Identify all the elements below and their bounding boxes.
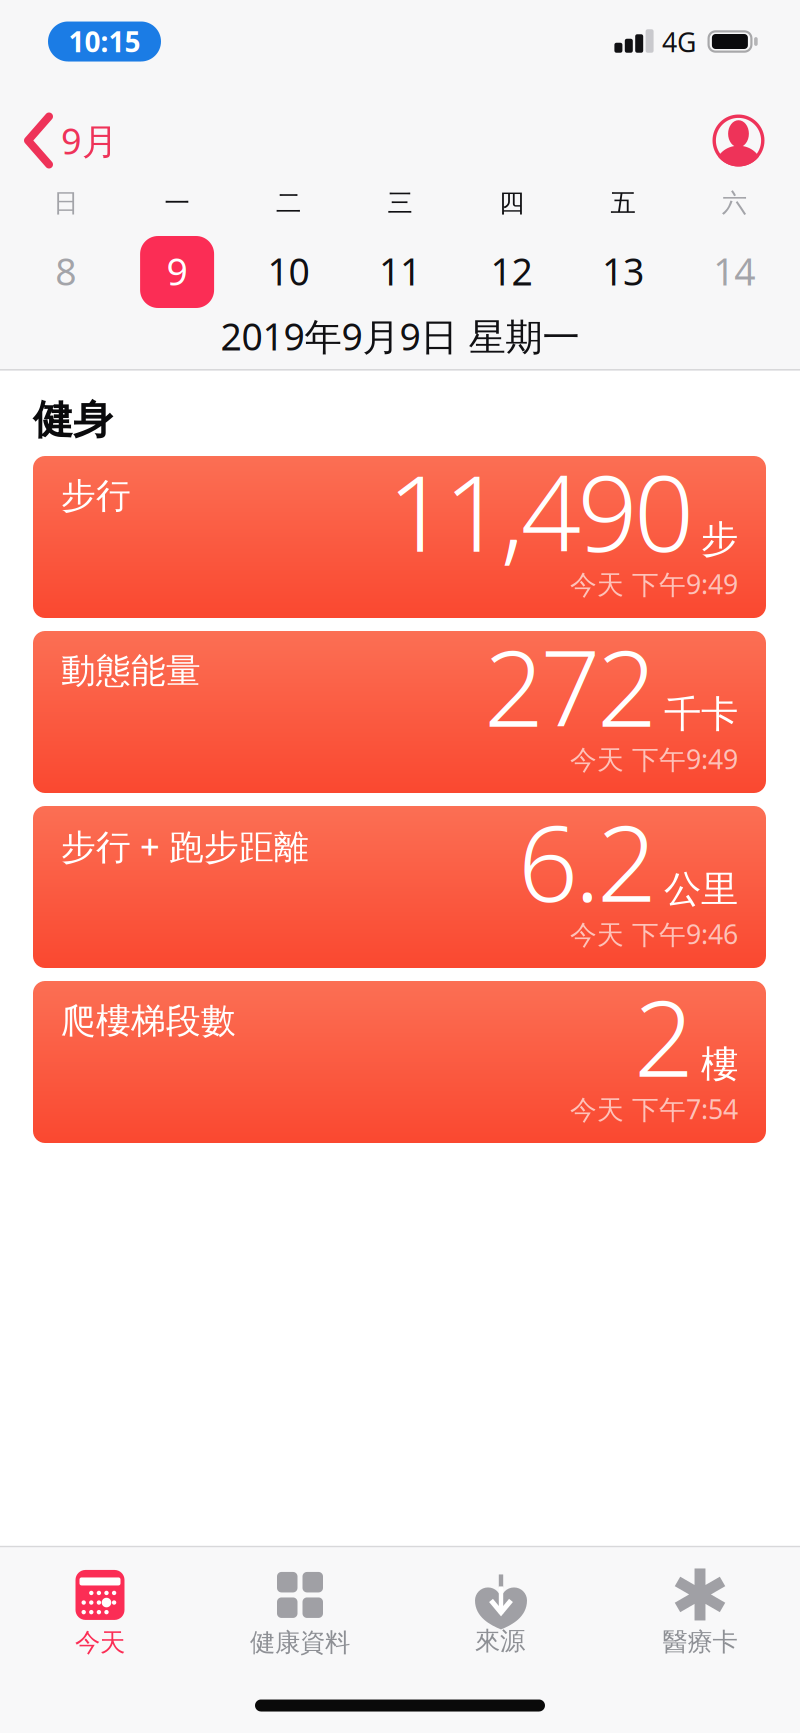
staticText: 今天 下午9:46 (570, 916, 738, 952)
staticText: 爬樓梯段數 (61, 1000, 236, 1042)
staticText: 11,490 (387, 441, 694, 581)
button[interactable]: 10 (252, 235, 326, 307)
button[interactable]: 11 (363, 235, 437, 307)
staticText: 健康資料 (250, 1627, 350, 1658)
staticText: 一 (165, 187, 190, 218)
button[interactable]: 健康資料 (205, 1559, 395, 1669)
button[interactable]: 8 (29, 235, 103, 307)
staticText: 四 (499, 187, 524, 218)
button[interactable]: 動態能量 (33, 631, 766, 793)
button[interactable]: 步行 (33, 456, 766, 618)
staticText: 步行 + 跑步距離 (61, 823, 309, 869)
staticText: 千卡 (664, 691, 738, 737)
staticText: 二 (276, 187, 301, 218)
staticText: 步行 (61, 475, 131, 517)
staticText: 12 (490, 246, 532, 296)
staticText: 272 (484, 616, 657, 756)
staticText: 11 (379, 246, 421, 296)
staticText: 4G (662, 24, 696, 60)
staticText: 動態能量 (61, 650, 201, 692)
staticText: 今天 下午7:54 (570, 1091, 738, 1127)
button[interactable]: 9月 (28, 111, 118, 169)
staticText: 2019年9月9日 星期一 (220, 311, 579, 361)
button[interactable]: 醫療卡 (605, 1558, 795, 1668)
staticText: 步 (701, 516, 738, 562)
staticText: 今天 (75, 1627, 125, 1658)
button[interactable]: 爬樓梯段數 (33, 981, 766, 1143)
staticText: 來源 (475, 1625, 525, 1656)
staticText: 今天 下午9:49 (570, 741, 738, 777)
button[interactable]: 個人檔案 (712, 114, 764, 166)
staticText: 日 (53, 187, 78, 218)
staticText: 三 (387, 187, 412, 218)
staticText: 五 (610, 187, 635, 218)
staticText: 6.2 (518, 791, 657, 931)
staticText: 10:15 (68, 23, 140, 60)
staticText: 樓 (701, 1041, 738, 1087)
staticText: 10 (268, 246, 310, 296)
staticText: 14 (713, 246, 755, 296)
staticText: 2 (634, 966, 694, 1106)
staticText: 今天 下午9:49 (570, 566, 738, 602)
button[interactable]: 9 (140, 235, 214, 307)
button[interactable]: 12 (474, 235, 548, 307)
button[interactable]: 來源 (405, 1557, 595, 1667)
staticText: 9月 (61, 117, 118, 164)
staticText: 健身 (33, 395, 113, 444)
staticText: 公里 (664, 866, 738, 912)
button[interactable]: 今天 (5, 1559, 195, 1669)
staticText: 13 (602, 246, 644, 296)
staticText: 醫療卡 (662, 1626, 737, 1657)
button[interactable]: 14 (697, 235, 771, 307)
button[interactable]: 步行 + 跑步距離 (33, 806, 766, 968)
button[interactable]: 13 (586, 235, 660, 307)
staticText: 9 (167, 246, 188, 296)
staticText: 六 (722, 187, 747, 218)
staticText: 8 (55, 246, 76, 296)
